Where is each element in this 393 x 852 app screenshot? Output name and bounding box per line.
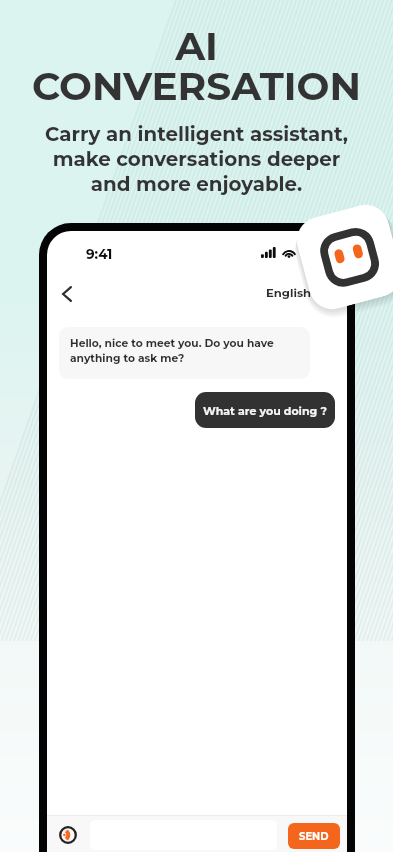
staticText: Carry an intelligent assistant, make con… — [45, 122, 348, 196]
button[interactable]: English — [266, 283, 323, 303]
staticText: What are you doing ? — [203, 404, 327, 417]
staticText: Hello, nice to meet you. Do you have any… — [70, 337, 310, 364]
button[interactable]: Voice input — [59, 826, 77, 844]
button[interactable]: SEND — [288, 823, 340, 849]
button[interactable]: AI assistant app icon — [291, 199, 393, 314]
staticText: English — [266, 286, 312, 300]
button[interactable]: Back — [50, 277, 84, 311]
button[interactable]: What are you doing ? — [195, 392, 335, 428]
staticText: 9:41 — [86, 246, 113, 262]
staticText: SEND — [299, 830, 329, 842]
button[interactable]: Hello, nice to meet you. Do you have any… — [59, 327, 310, 379]
staticText: AI CONVERSATION — [32, 22, 361, 110]
